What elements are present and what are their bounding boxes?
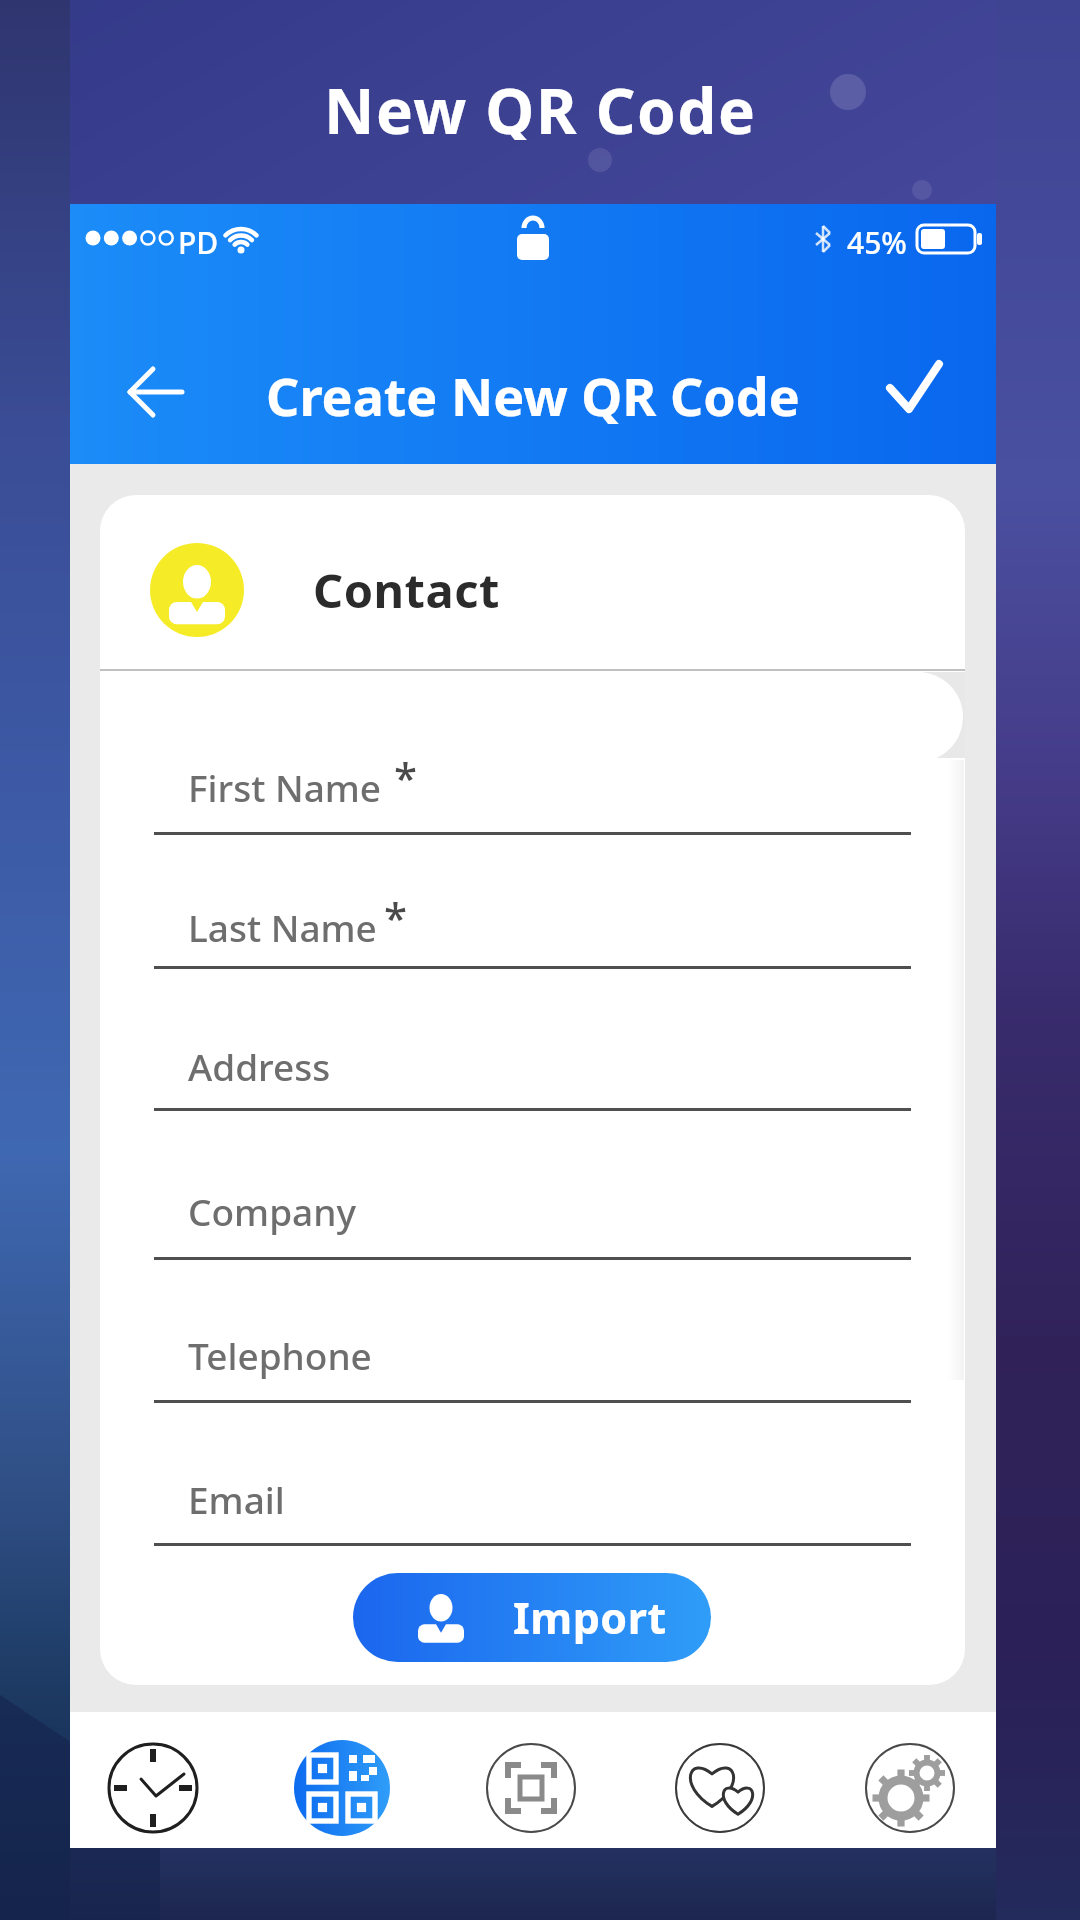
button[interactable] bbox=[294, 1740, 390, 1836]
staticText: * bbox=[384, 889, 408, 937]
button[interactable] bbox=[870, 344, 960, 430]
staticText: Email bbox=[188, 1474, 285, 1524]
button[interactable] bbox=[110, 354, 202, 430]
staticText: Create New QR Code bbox=[266, 360, 800, 424]
staticText: New QR Code bbox=[324, 68, 757, 140]
button[interactable]: Import bbox=[353, 1573, 711, 1662]
staticText: Address bbox=[188, 1041, 331, 1091]
button[interactable] bbox=[672, 1740, 768, 1836]
button[interactable] bbox=[130, 524, 630, 656]
staticText: Last Name bbox=[188, 902, 377, 952]
button[interactable] bbox=[483, 1740, 579, 1836]
staticText: * bbox=[394, 749, 418, 797]
staticText: Contact bbox=[313, 558, 500, 622]
staticText: First Name bbox=[188, 762, 382, 812]
staticText: Telephone bbox=[188, 1330, 372, 1380]
button[interactable] bbox=[862, 1740, 958, 1836]
staticText: 45% bbox=[847, 222, 907, 256]
staticText: Import bbox=[513, 1588, 667, 1647]
staticText: PD bbox=[178, 222, 219, 256]
button[interactable] bbox=[105, 1740, 201, 1836]
staticText: Company bbox=[188, 1186, 356, 1236]
